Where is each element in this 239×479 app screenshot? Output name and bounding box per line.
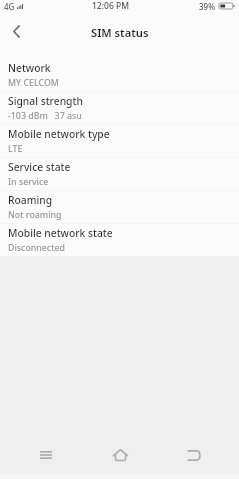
staticText: Signal strength <box>8 94 83 108</box>
button[interactable]: Network <box>0 58 239 91</box>
staticText: 39% <box>199 1 215 12</box>
staticText: Network <box>8 61 51 75</box>
staticText: 4G <box>4 1 15 12</box>
button[interactable]: Signal strength <box>0 91 239 124</box>
button[interactable]: Recent apps <box>28 437 64 473</box>
button[interactable]: Mobile network state <box>0 223 239 256</box>
staticText: Mobile network type <box>8 127 110 141</box>
staticText: -103 dBm 37 asu <box>8 110 82 122</box>
button[interactable]: Home <box>102 437 138 473</box>
button[interactable]: Mobile network type <box>0 124 239 157</box>
button[interactable]: Navigate up <box>0 16 32 47</box>
staticText: SIM status <box>91 25 149 40</box>
staticText: Not roaming <box>8 209 62 221</box>
staticText: Service state <box>8 160 71 174</box>
staticText: LTE <box>8 143 23 155</box>
staticText: Roaming <box>8 193 53 207</box>
button[interactable]: Roaming <box>0 190 239 223</box>
staticText: Mobile network state <box>8 226 113 240</box>
staticText: 12:06 PM <box>92 0 129 12</box>
staticText: In service <box>8 176 49 188</box>
staticText: MY CELCOM <box>8 77 59 89</box>
button[interactable]: Back <box>175 437 211 473</box>
button[interactable]: Service state <box>0 157 239 190</box>
staticText: Disconnected <box>8 242 66 254</box>
